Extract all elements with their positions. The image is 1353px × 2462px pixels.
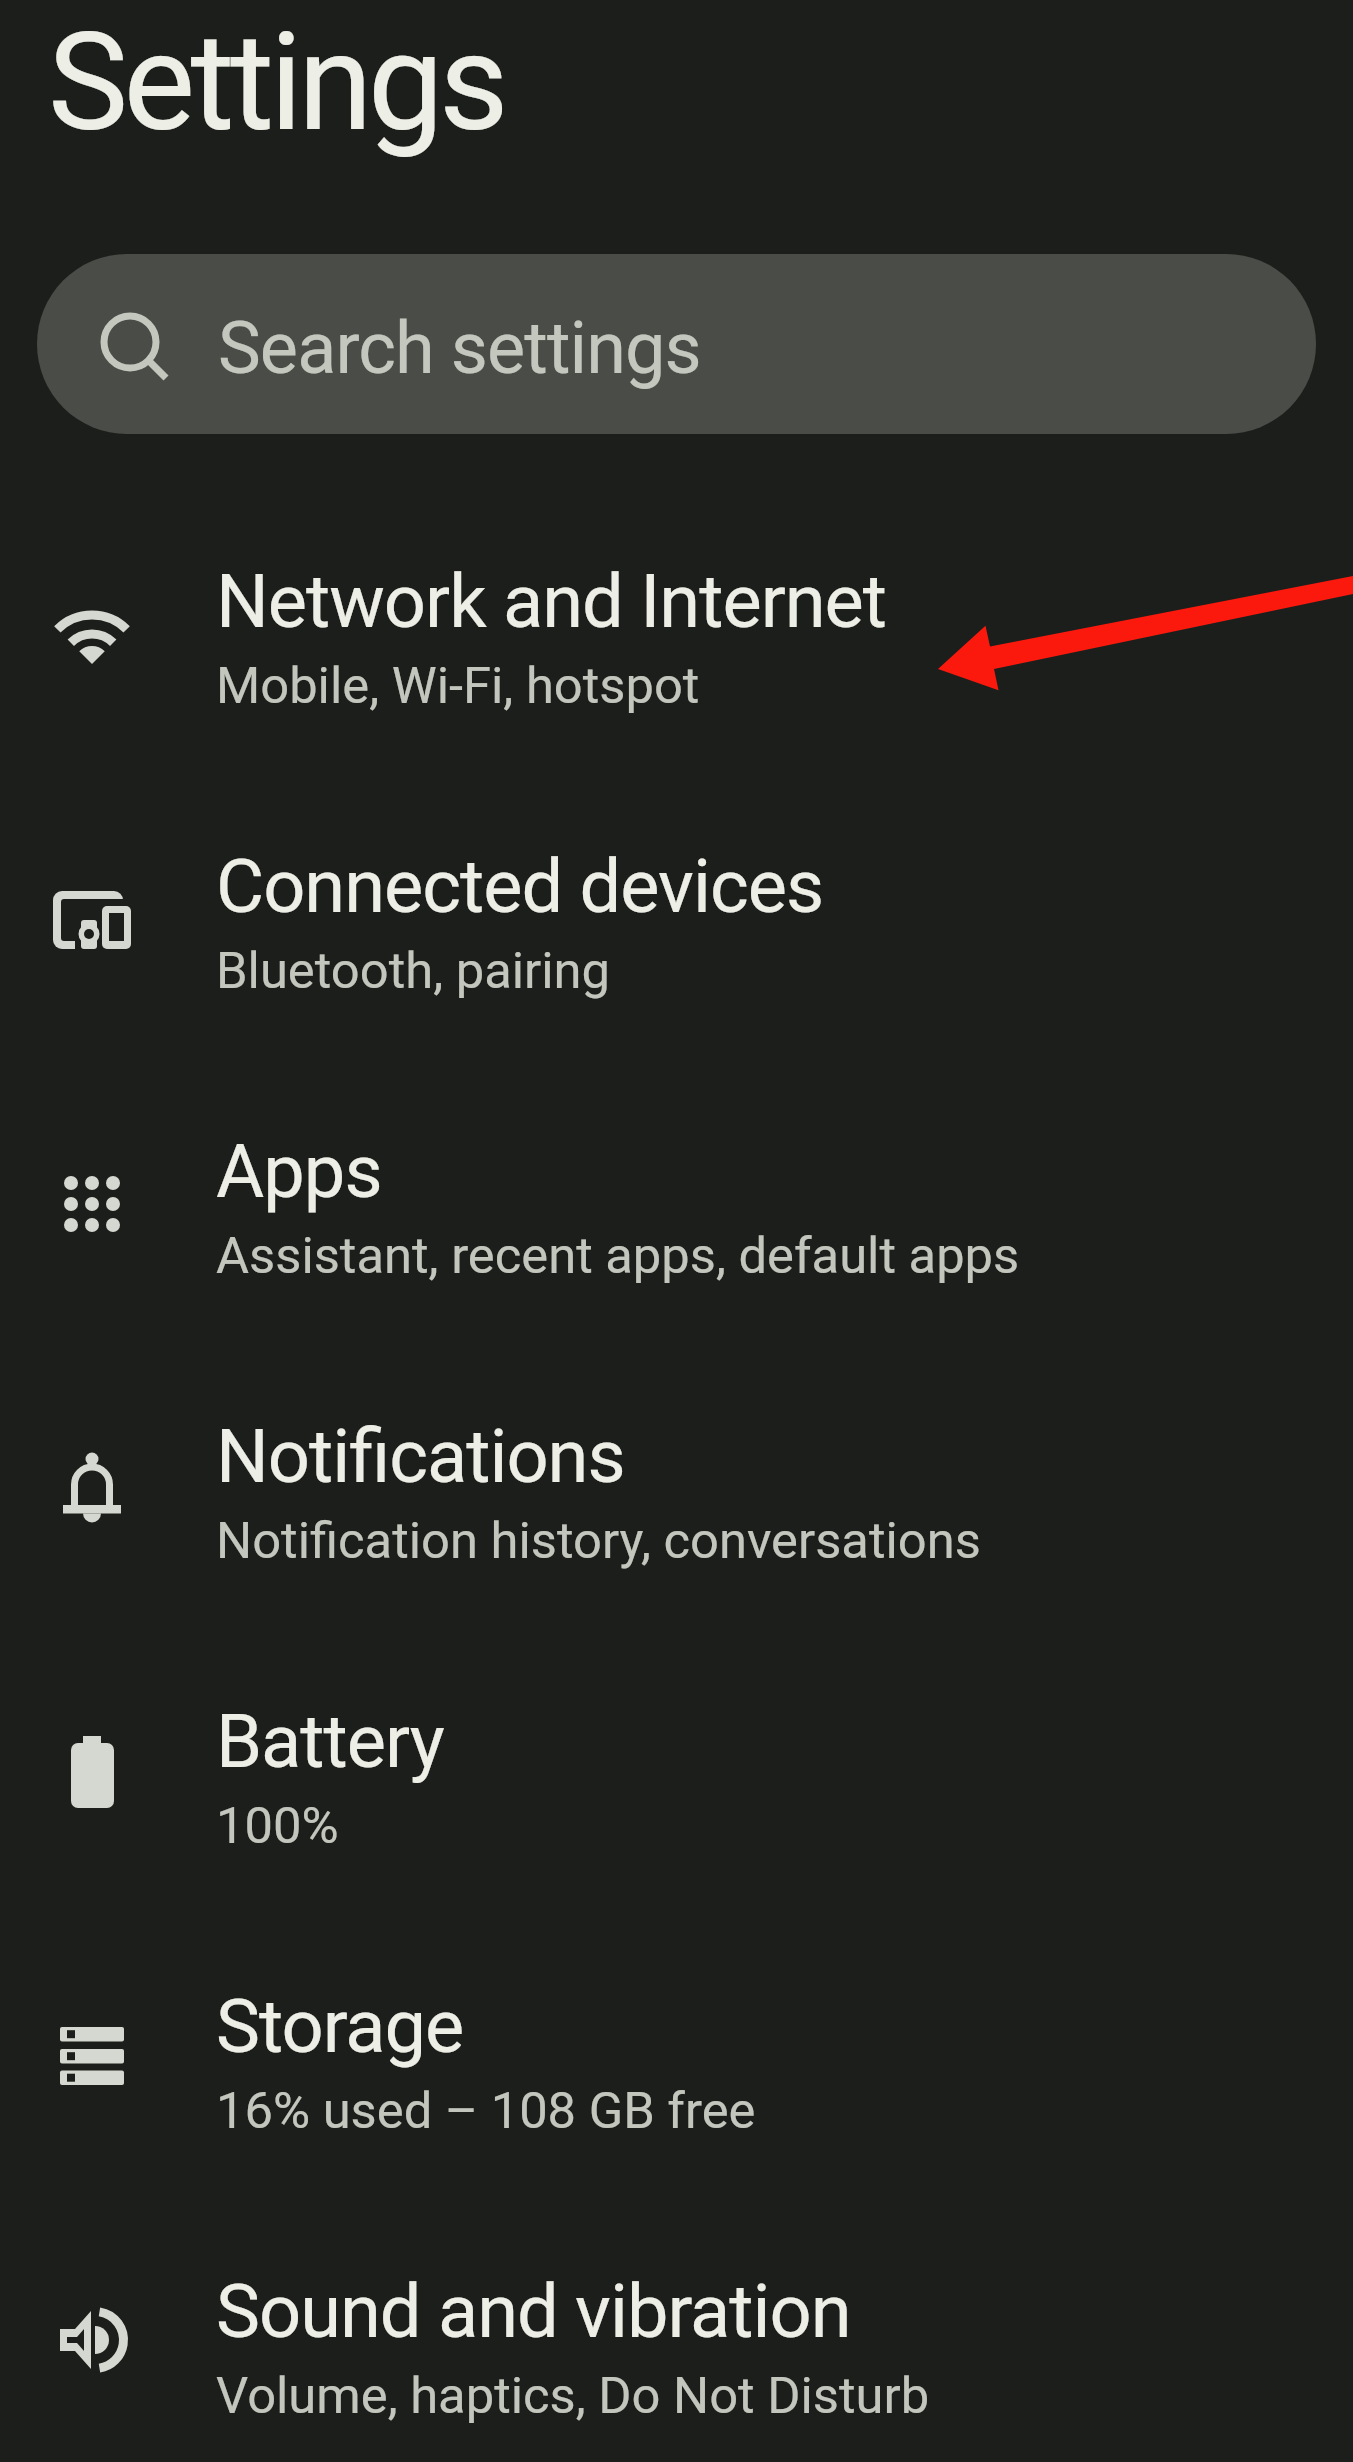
staticText: Battery xyxy=(216,1698,444,1785)
staticText: Mobile, Wi-Fi, hotspot xyxy=(216,656,700,715)
staticText: Assistant, recent apps, default apps xyxy=(216,1226,1020,1285)
button[interactable]: Notifications xyxy=(0,1377,1353,1662)
staticText: Volume, haptics, Do Not Disturb xyxy=(216,2366,930,2425)
button[interactable]: Battery xyxy=(0,1662,1353,1947)
staticText: Network and Internet xyxy=(216,558,887,645)
button[interactable]: Apps xyxy=(0,1092,1353,1377)
staticText: Search settings xyxy=(218,306,701,390)
staticText: Notifications xyxy=(216,1413,625,1500)
staticText: Settings xyxy=(48,4,505,162)
staticText: 16% used – 108 GB free xyxy=(216,2081,756,2140)
staticText: Bluetooth, pairing xyxy=(216,941,610,1000)
button[interactable]: Search settings xyxy=(37,254,1316,434)
button[interactable]: Network and Internet xyxy=(0,522,1353,807)
button[interactable]: Connected devices xyxy=(0,807,1353,1092)
button[interactable]: Sound and vibration xyxy=(0,2232,1353,2462)
staticText: Notification history, conversations xyxy=(216,1511,981,1570)
staticText: Apps xyxy=(216,1128,382,1215)
staticText: Storage xyxy=(216,1983,464,2070)
staticText: 100% xyxy=(216,1796,339,1855)
button[interactable]: Storage xyxy=(0,1947,1353,2232)
staticText: Connected devices xyxy=(216,843,824,930)
staticText: Sound and vibration xyxy=(216,2268,851,2355)
